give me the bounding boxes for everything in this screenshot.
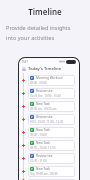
staticText: 9:00 - 10:00 11:00 - 12:00 — [30, 120, 64, 124]
button[interactable]: New Task — [28, 101, 75, 112]
staticText: Timeline — [0, 6, 90, 17]
button[interactable]: Review site — [28, 88, 75, 99]
staticText: Morning Workout — [36, 76, 63, 80]
button[interactable]: Menu — [19, 65, 79, 73]
staticText: Day 09:00 am - 09:30 — [30, 172, 58, 176]
staticText: Tue 8 Dec 10:00 - 10:45 — [30, 94, 61, 98]
staticText: Review site — [36, 89, 53, 93]
button[interactable]: Review site — [28, 153, 75, 164]
staticText: Today's Timeline — [28, 66, 62, 72]
staticText: 09:00 am - 09:30 am — [30, 107, 57, 111]
staticText: 08:00 - 09:00 — [30, 81, 47, 85]
other: Menu — [22, 67, 26, 71]
button[interactable]: New Task — [28, 166, 75, 177]
staticText: into your activities — [6, 34, 55, 42]
staticText: New Task — [36, 167, 51, 171]
staticText: Review site — [36, 115, 53, 119]
staticText: Provide detailed insights — [6, 24, 71, 32]
staticText: 09:00 - 10:30 11:30 — [30, 146, 56, 150]
staticText: New Task — [36, 141, 51, 145]
staticText: New Task — [36, 128, 51, 132]
staticText: 9:41 — [22, 60, 28, 64]
staticText: 10:00 - 11:00 — [30, 159, 47, 163]
staticText: New Task — [36, 102, 51, 106]
button[interactable]: New Task — [28, 127, 75, 138]
staticText: Review site — [36, 154, 53, 158]
staticText: 09:00 - 10:00 — [30, 133, 47, 137]
button[interactable]: New Task — [28, 140, 75, 151]
button[interactable]: Morning Workout — [28, 75, 75, 86]
button[interactable]: Review site — [28, 114, 75, 125]
